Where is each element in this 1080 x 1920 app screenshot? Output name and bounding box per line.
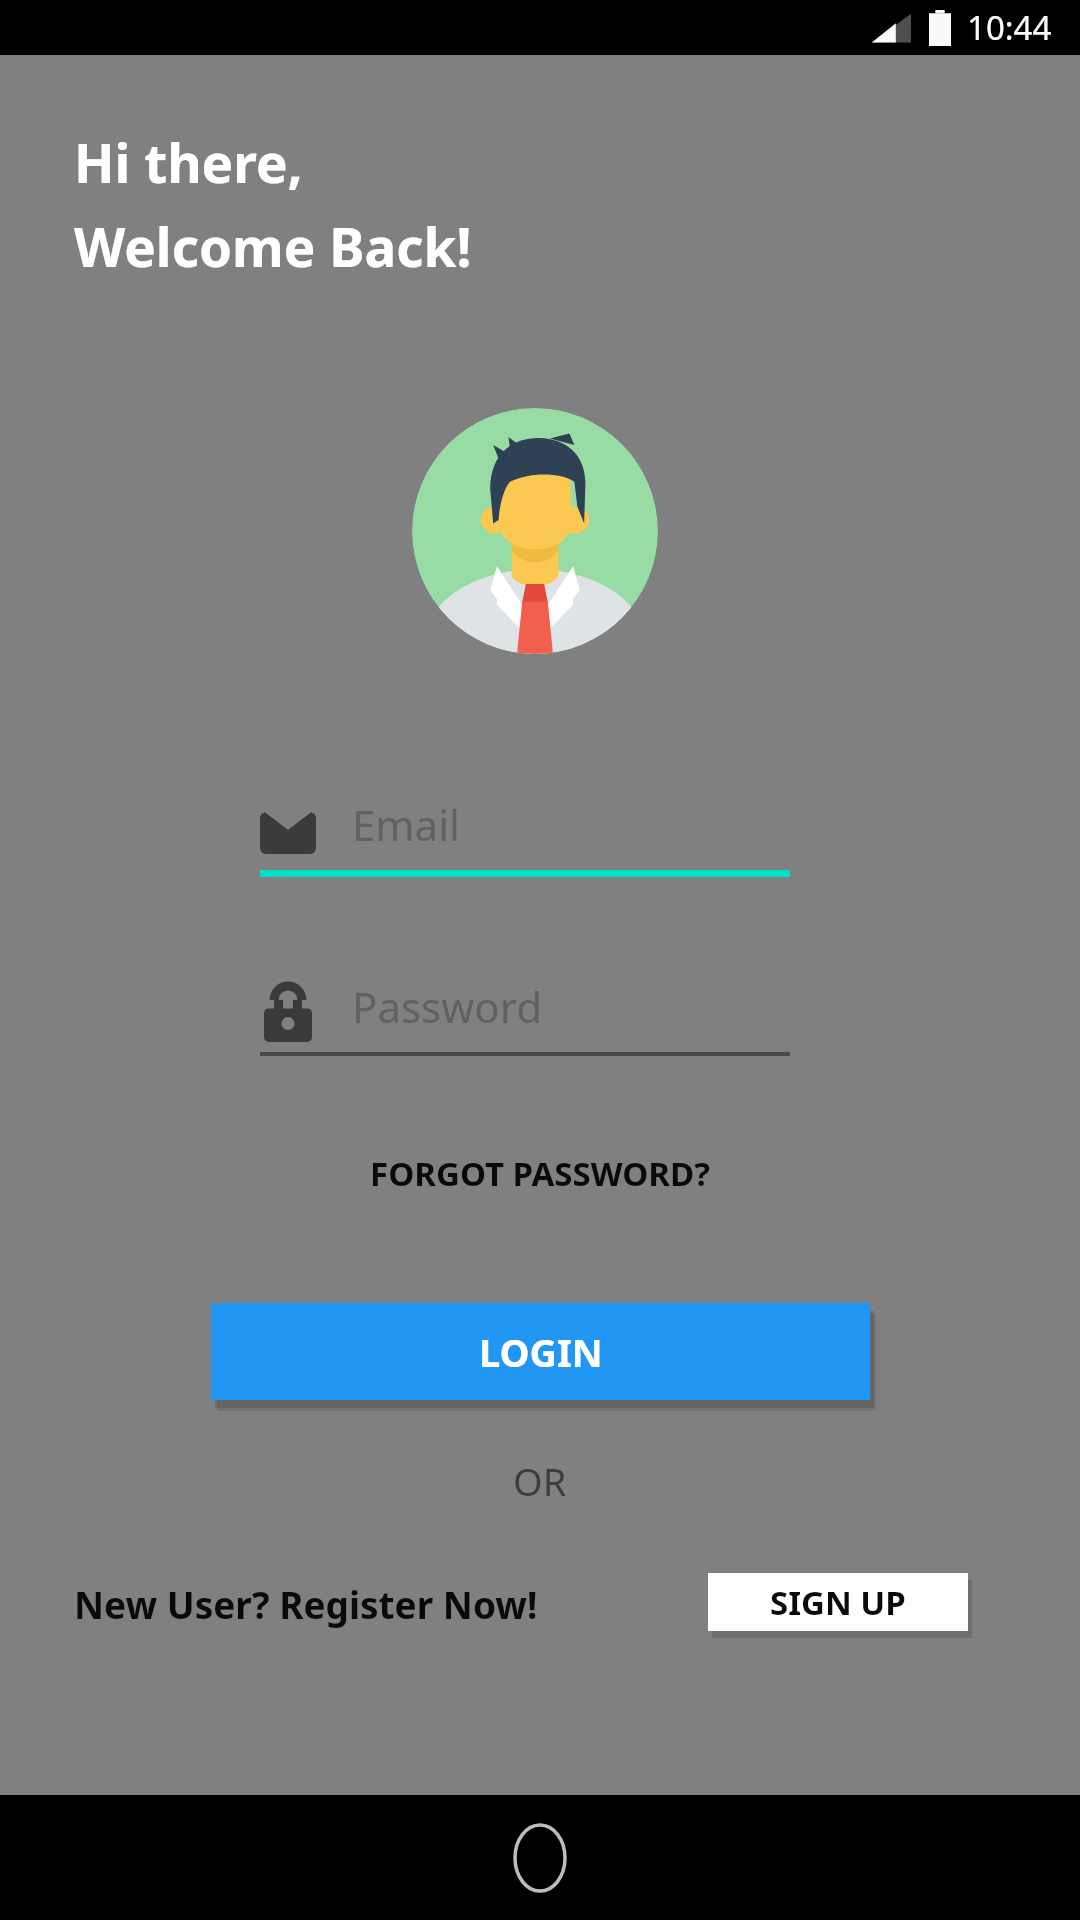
staticText: LOGIN [479, 1326, 603, 1378]
staticText: SIGN UP [770, 1580, 906, 1625]
staticText: FORGOT PASSWORD? [370, 1151, 710, 1196]
staticText: Password [352, 978, 542, 1035]
button[interactable]: LOGIN [211, 1303, 870, 1400]
staticText: Welcome Back! [74, 210, 472, 282]
staticText: New User? Register Now! [74, 1579, 538, 1629]
button[interactable]: SIGN UP [708, 1573, 968, 1631]
button[interactable]: Password [260, 972, 790, 1056]
button[interactable]: Email [260, 790, 790, 876]
staticText: OR [513, 1455, 567, 1507]
staticText: Hi there, [74, 126, 303, 198]
button[interactable]: New User? Register Now! [74, 1573, 538, 1635]
button[interactable]: Home [505, 1823, 575, 1893]
button[interactable]: FORGOT PASSWORD? [0, 1138, 1080, 1208]
staticText: Email [352, 796, 460, 853]
staticText: 10:44 [967, 5, 1052, 50]
